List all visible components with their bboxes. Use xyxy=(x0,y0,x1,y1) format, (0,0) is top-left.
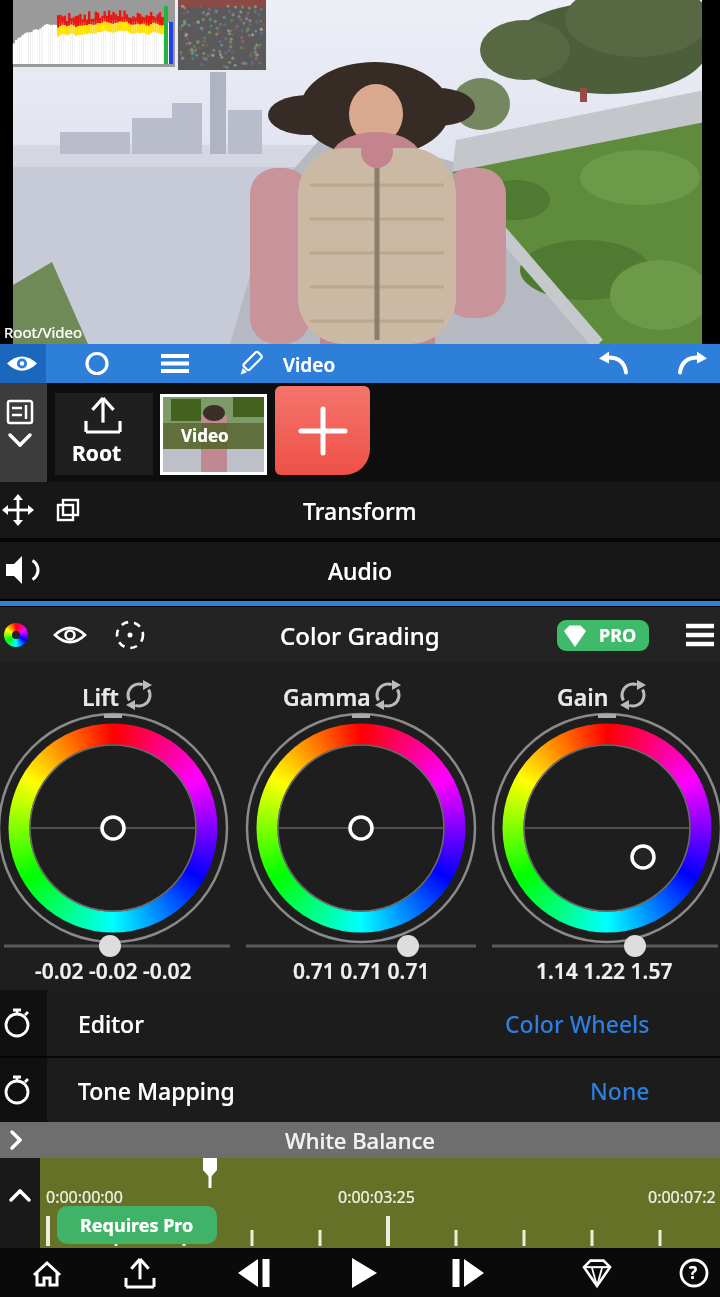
staticText: Video xyxy=(181,424,229,447)
staticText: Requires Pro xyxy=(80,1213,194,1238)
staticText: Root xyxy=(72,439,122,468)
staticText: None xyxy=(590,1075,650,1106)
button[interactable]: Tone Mapping xyxy=(0,1058,720,1122)
button[interactable] xyxy=(660,344,720,383)
staticText: Audio xyxy=(328,555,393,586)
button[interactable] xyxy=(514,1248,617,1297)
button[interactable]: Color Grading xyxy=(0,607,720,663)
button[interactable] xyxy=(308,1248,411,1297)
button[interactable] xyxy=(0,383,47,482)
staticText: Lift xyxy=(82,681,119,712)
button[interactable]: Audio xyxy=(0,542,720,599)
button[interactable] xyxy=(186,344,306,383)
staticText: 0.71 0.71 0.71 xyxy=(293,957,430,986)
staticText: Gain xyxy=(557,681,609,712)
staticText: Video xyxy=(283,352,336,378)
button[interactable]: Transform xyxy=(0,482,720,538)
staticText: Root/Video xyxy=(4,322,83,342)
button[interactable]: Video xyxy=(160,394,267,475)
staticText: Transform xyxy=(303,495,417,526)
button[interactable]: Requires Pro xyxy=(57,1206,217,1244)
staticText: Tone Mapping xyxy=(78,1075,235,1106)
button[interactable] xyxy=(55,393,153,475)
button[interactable]: Editor xyxy=(0,990,720,1056)
button[interactable]: White Balance xyxy=(0,1122,720,1158)
staticText: 0:00:03:25 xyxy=(338,1186,415,1208)
button[interactable] xyxy=(617,1248,720,1297)
button[interactable] xyxy=(46,344,116,383)
staticText: White Balance xyxy=(285,1125,435,1155)
staticText: PRO xyxy=(599,623,637,648)
staticText: Color Grading xyxy=(280,619,440,652)
button[interactable] xyxy=(275,386,370,475)
staticText: 0:00:00:00 xyxy=(46,1186,123,1208)
button[interactable] xyxy=(600,344,660,383)
button[interactable] xyxy=(0,1248,102,1297)
staticText: ? xyxy=(689,1261,698,1284)
staticText: -0.02 -0.02 -0.02 xyxy=(35,957,192,986)
button[interactable] xyxy=(116,344,186,383)
button[interactable] xyxy=(411,1248,514,1297)
staticText: Editor xyxy=(78,1008,144,1039)
staticText: 0:00:07:2 xyxy=(648,1186,716,1208)
button[interactable]: PRO xyxy=(557,620,649,651)
button[interactable] xyxy=(205,1248,308,1297)
staticText: Color Wheels xyxy=(505,1008,650,1039)
button[interactable] xyxy=(0,344,46,383)
staticText: 1.14 1.22 1.57 xyxy=(536,957,673,986)
button[interactable] xyxy=(102,1248,205,1297)
staticText: Gamma xyxy=(283,681,371,712)
